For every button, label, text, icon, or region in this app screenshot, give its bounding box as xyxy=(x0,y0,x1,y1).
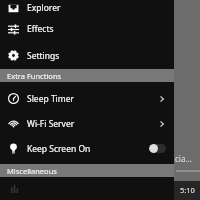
staticText: Effects xyxy=(27,23,54,35)
staticText: Sleep Timer xyxy=(27,93,75,105)
staticText: Wi-Fi Server xyxy=(27,118,75,130)
button[interactable]: Keep Screen On xyxy=(0,136,174,161)
staticText: cia… xyxy=(175,153,192,164)
staticText: Extra Functions xyxy=(7,71,62,81)
staticText: 5:10 xyxy=(180,185,195,195)
staticText: Keep Screen On xyxy=(27,143,91,155)
button[interactable]: Explorer xyxy=(0,0,174,16)
button[interactable]: Wi-Fi Server xyxy=(0,111,174,136)
button[interactable]: Sleep Timer xyxy=(0,86,174,111)
button[interactable]: Effects xyxy=(0,16,174,42)
button[interactable]: Settings xyxy=(0,42,174,69)
staticText: Settings xyxy=(27,50,60,62)
button[interactable]: Keep Screen On toggle xyxy=(149,144,166,153)
staticText: Explorer xyxy=(27,2,61,14)
staticText: Miscellaneous xyxy=(7,166,57,176)
